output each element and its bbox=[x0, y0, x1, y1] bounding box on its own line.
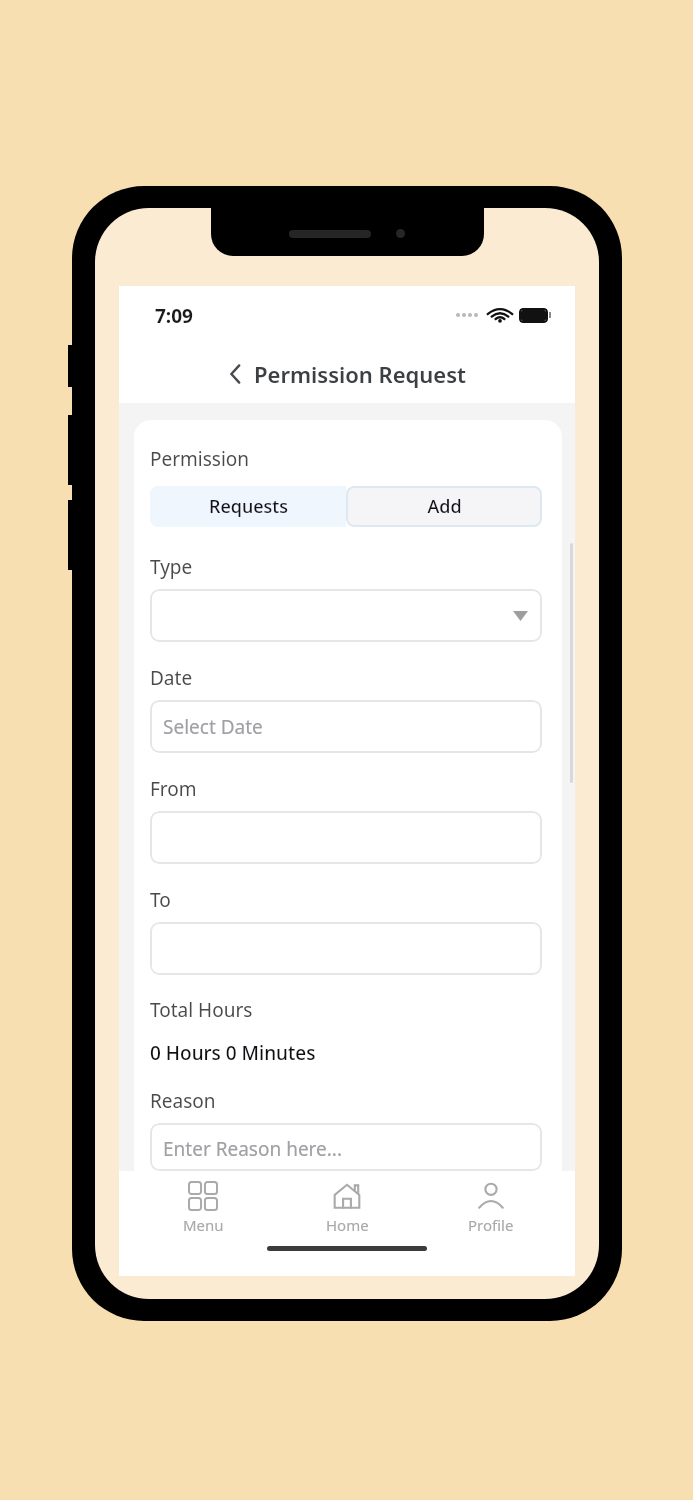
staticText: Permission Request bbox=[254, 359, 467, 389]
staticText: Reason bbox=[150, 1088, 216, 1114]
staticText: Date bbox=[150, 665, 193, 691]
staticText: Enter Reason here... bbox=[163, 1136, 343, 1162]
button[interactable]: Select Date bbox=[150, 700, 542, 753]
staticText: Select Date bbox=[163, 714, 263, 740]
button[interactable]: Add bbox=[346, 486, 542, 527]
button[interactable]: Menu bbox=[143, 1171, 263, 1243]
staticText: Menu bbox=[183, 1215, 224, 1235]
button[interactable]: Requests bbox=[150, 486, 346, 527]
staticText: From bbox=[150, 776, 197, 802]
button[interactable] bbox=[150, 922, 542, 975]
staticText: Home bbox=[326, 1215, 369, 1235]
staticText: Add bbox=[427, 494, 462, 519]
staticText: Profile bbox=[468, 1215, 514, 1235]
button[interactable]: Enter Reason here... bbox=[150, 1123, 542, 1171]
other: Back bbox=[227, 361, 244, 387]
other: Open dropdown bbox=[513, 611, 528, 621]
button[interactable]: Profile bbox=[431, 1171, 551, 1243]
button[interactable] bbox=[150, 811, 542, 864]
staticText: Requests bbox=[209, 494, 288, 519]
staticText: 7:09 bbox=[155, 303, 193, 329]
staticText: Permission bbox=[150, 446, 250, 472]
staticText: To bbox=[150, 887, 171, 913]
button[interactable]: Back bbox=[227, 359, 467, 389]
button[interactable]: Home bbox=[287, 1171, 407, 1243]
button[interactable]: Open dropdown bbox=[150, 589, 542, 642]
staticText: 0 Hours 0 Minutes bbox=[150, 1040, 316, 1066]
staticText: Total Hours bbox=[150, 997, 253, 1023]
staticText: Type bbox=[150, 554, 193, 580]
